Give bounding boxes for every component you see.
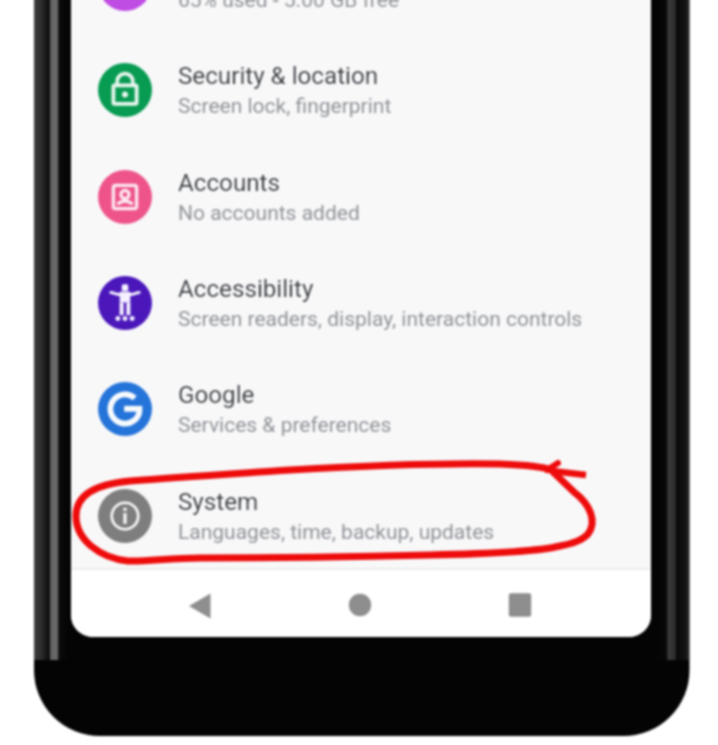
button[interactable]: Back: [176, 582, 224, 630]
button[interactable]: Home: [336, 581, 384, 629]
staticText: No accounts added: [178, 201, 360, 226]
staticText: Accounts: [178, 169, 280, 197]
button[interactable]: Accessibility: [71, 250, 651, 356]
staticText: Security & location: [178, 62, 379, 90]
button[interactable]: Storage: [71, 0, 651, 37]
button[interactable]: Recents: [496, 581, 544, 629]
staticText: Screen lock, fingerprint: [178, 94, 392, 119]
button[interactable]: Security & location: [71, 37, 651, 143]
staticText: System: [178, 488, 259, 516]
staticText: Google: [178, 381, 255, 409]
button[interactable]: System: [71, 463, 651, 569]
staticText: Accessibility: [178, 275, 314, 303]
button[interactable]: Accounts: [71, 144, 651, 250]
button[interactable]: Google: [71, 356, 651, 462]
staticText: Services & preferences: [178, 413, 392, 438]
staticText: 65% used - 5.00 GB free: [178, 0, 400, 13]
staticText: Screen readers, display, interaction con…: [178, 307, 583, 332]
staticText: Languages, time, backup, updates: [178, 520, 495, 545]
